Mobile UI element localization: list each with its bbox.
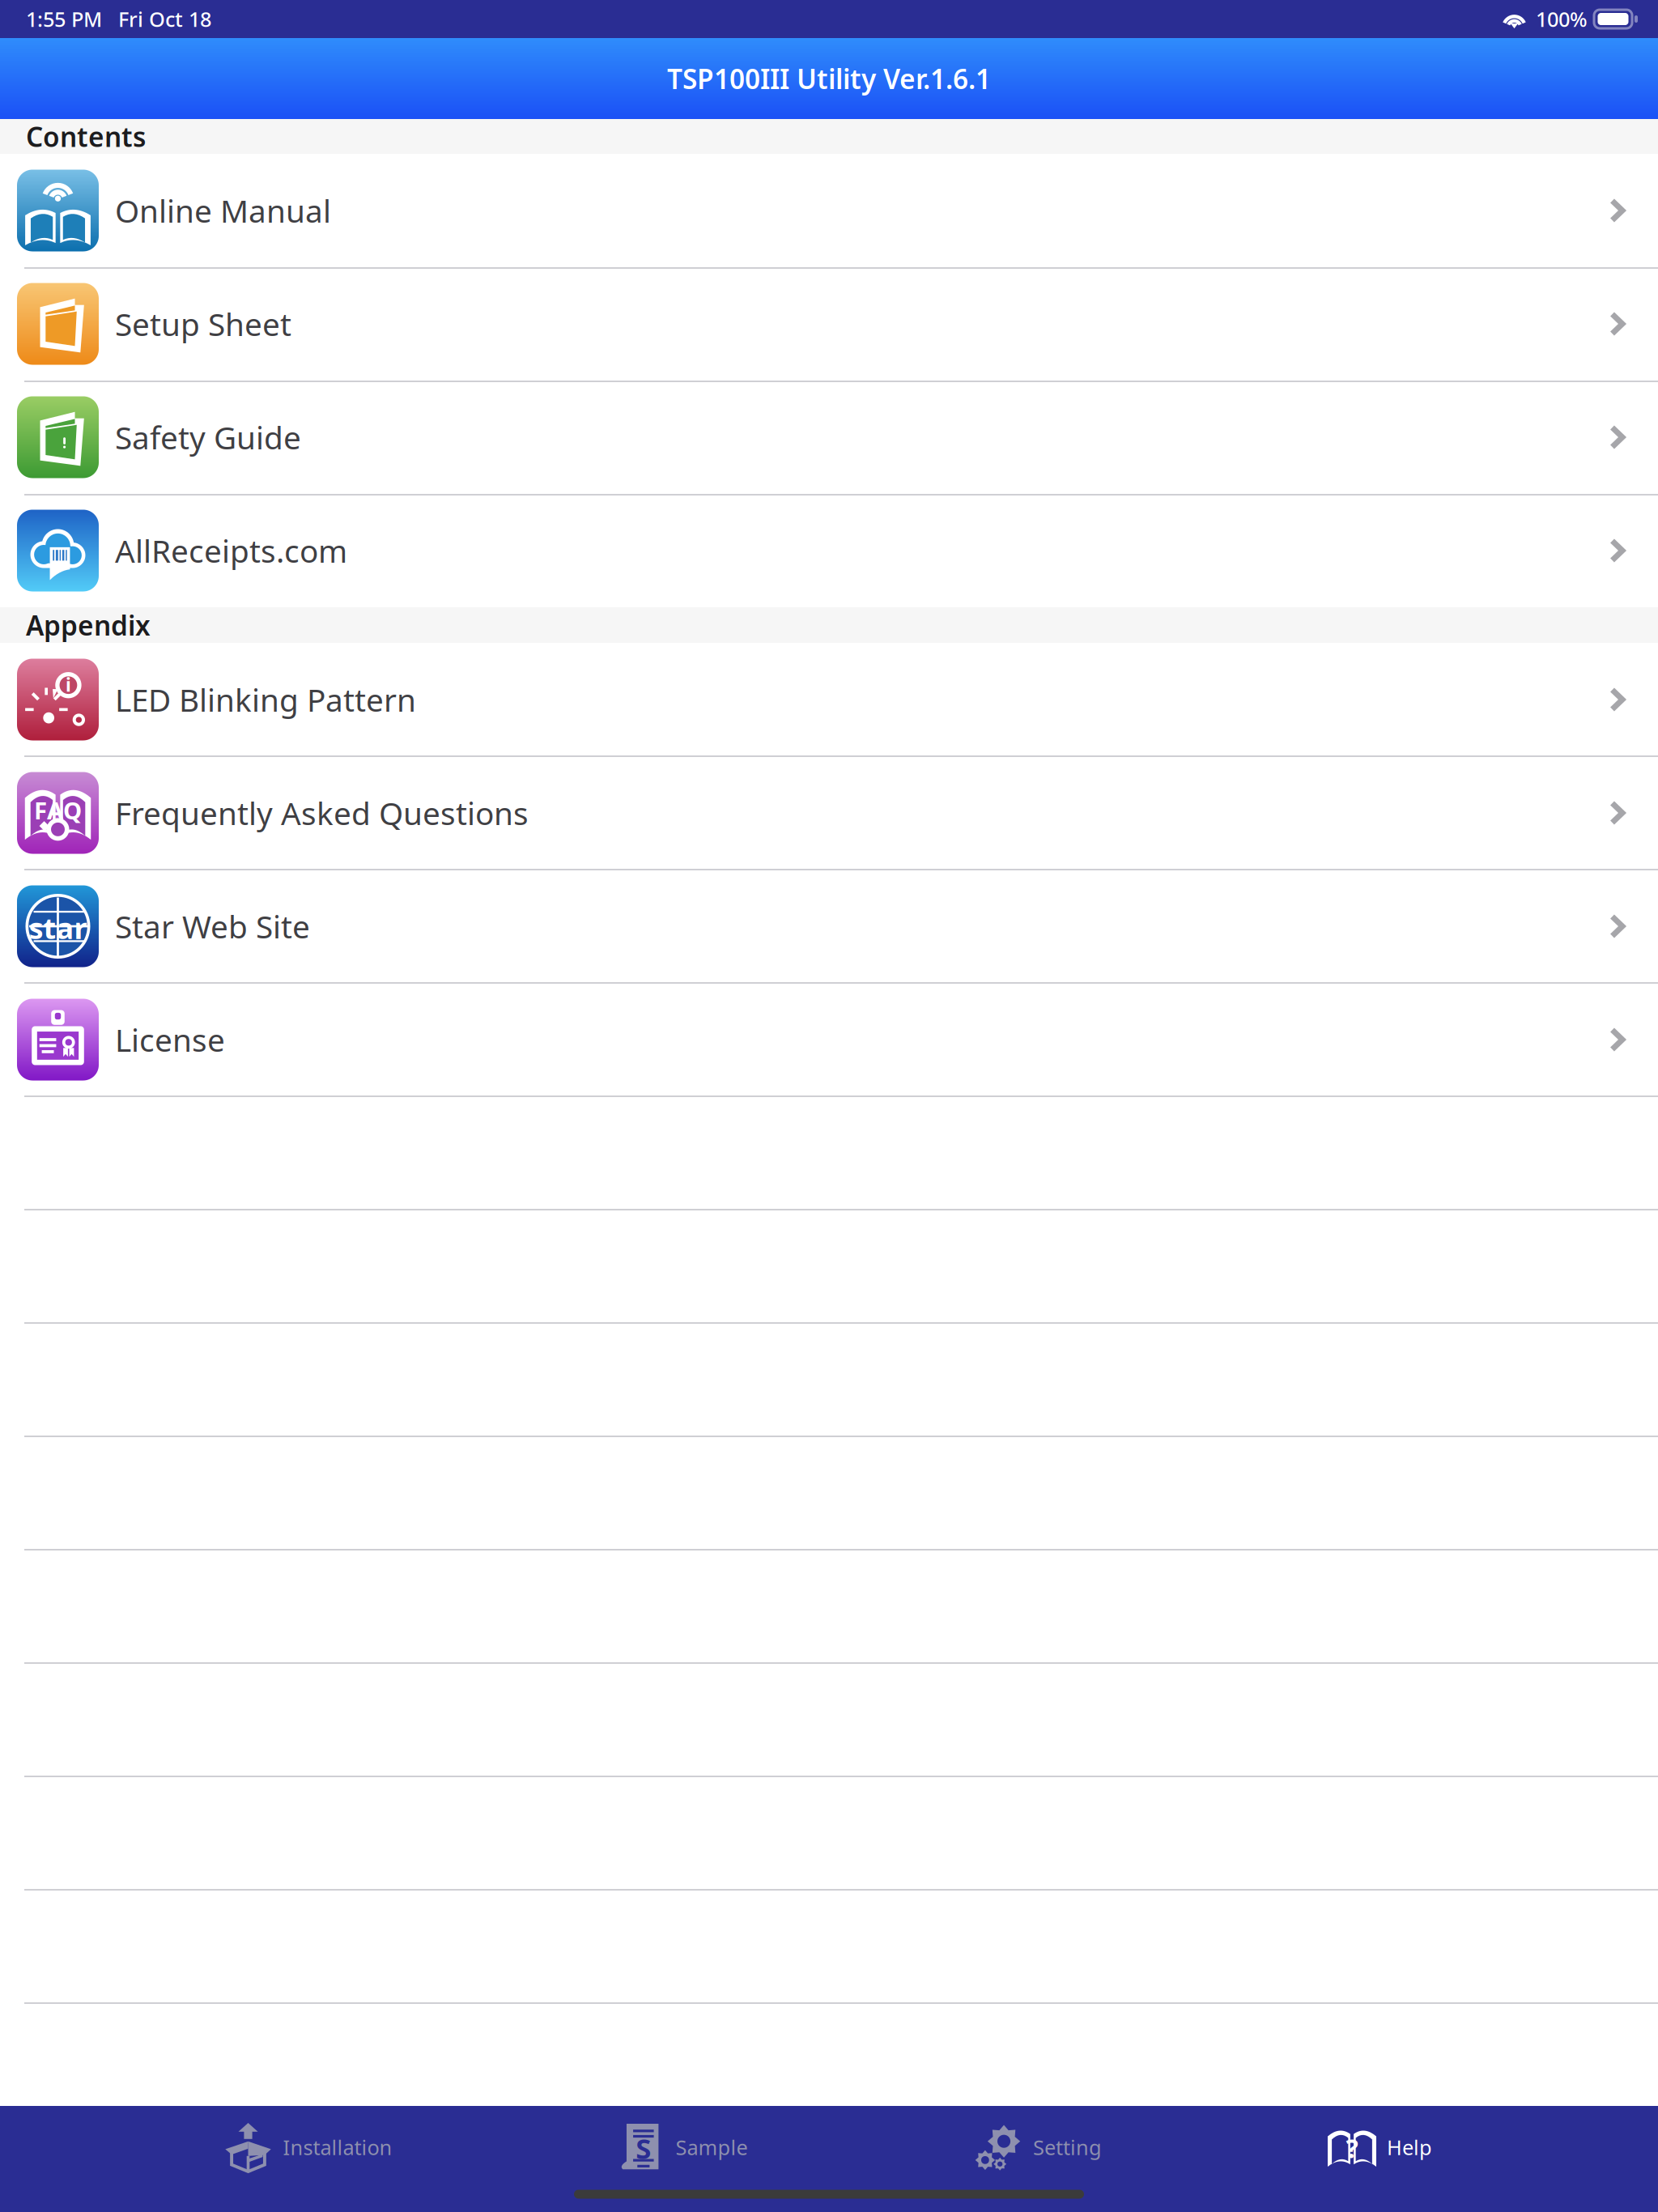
button[interactable]: ? <box>1313 2108 1447 2187</box>
button[interactable]: S <box>604 2108 762 2187</box>
staticText: TSP100III Utility Ver.1.6.1 <box>667 61 991 97</box>
staticText: 100% <box>1536 5 1588 33</box>
staticText: Appendix <box>26 607 151 643</box>
button[interactable]: FAQ <box>0 756 1658 870</box>
staticText: Frequently Asked Questions <box>115 792 529 834</box>
staticText: Contents <box>26 119 146 154</box>
staticText: 1:55 PM <box>26 5 102 33</box>
button[interactable]: License <box>0 983 1658 1096</box>
button[interactable]: Online Manual <box>0 154 1658 267</box>
button[interactable]: star <box>0 870 1658 983</box>
staticText: ? <box>1346 2131 1358 2165</box>
staticText: i <box>65 672 71 697</box>
staticText: LED Blinking Pattern <box>115 679 416 720</box>
staticText: star <box>29 908 87 947</box>
staticText: Online Manual <box>115 190 331 231</box>
staticText: Safety Guide <box>115 416 301 458</box>
staticText: Setting <box>1033 2134 1102 2161</box>
staticText: AllReceipts.com <box>115 530 347 571</box>
staticText: License <box>115 1019 225 1060</box>
button[interactable]: Installation <box>209 2108 407 2187</box>
staticText: Star Web Site <box>115 905 310 947</box>
staticText: Fri Oct 18 <box>118 5 211 33</box>
button[interactable]: AllReceipts.com <box>0 494 1658 607</box>
staticText: Sample <box>676 2134 748 2161</box>
button[interactable]: Setup Sheet <box>0 267 1658 381</box>
button[interactable]: Setting <box>958 2108 1116 2187</box>
staticText: Help <box>1387 2134 1432 2161</box>
staticText: Installation <box>283 2134 392 2161</box>
button[interactable]: Safety Guide <box>0 381 1658 494</box>
button[interactable]: i <box>0 643 1658 756</box>
staticText: S <box>636 2129 651 2167</box>
staticText: FAQ <box>34 794 82 826</box>
staticText: Setup Sheet <box>115 303 291 345</box>
